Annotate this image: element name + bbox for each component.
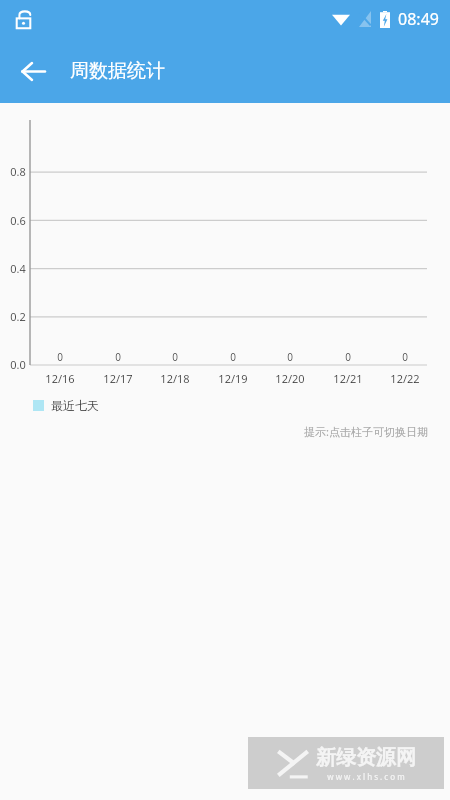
- staticText: w w w . x l h s . c o m: [327, 771, 405, 782]
- button[interactable]: 0: [94, 348, 142, 365]
- staticText: 12/21: [333, 371, 363, 386]
- button[interactable]: Back: [9, 47, 57, 95]
- button[interactable]: 0: [324, 348, 372, 365]
- staticText: 12/17: [103, 371, 133, 386]
- staticText: 新绿资源网: [316, 745, 416, 770]
- button[interactable]: 最近七天: [33, 398, 99, 413]
- staticText: 12/20: [275, 371, 305, 386]
- staticText: 0: [57, 350, 63, 364]
- staticText: 最近七天: [51, 398, 99, 413]
- button[interactable]: 0: [151, 348, 199, 365]
- button[interactable]: 0: [381, 348, 429, 365]
- staticText: 08:49: [398, 8, 439, 30]
- staticText: 0.0: [10, 357, 26, 372]
- staticText: 提示:点击柱子可切换日期: [304, 424, 428, 439]
- staticText: 周数据统计: [70, 59, 165, 83]
- staticText: 12/16: [45, 371, 75, 386]
- staticText: 0: [115, 350, 121, 364]
- staticText: 0: [287, 350, 293, 364]
- button[interactable]: 0: [266, 348, 314, 365]
- staticText: 12/18: [160, 371, 190, 386]
- staticText: 0: [402, 350, 408, 364]
- button[interactable]: 0: [36, 348, 84, 365]
- staticText: 0.2: [10, 309, 26, 324]
- button[interactable]: 0: [209, 348, 257, 365]
- staticText: 0: [172, 350, 178, 364]
- staticText: 12/19: [218, 371, 248, 386]
- staticText: 0.6: [10, 213, 26, 228]
- staticText: 0: [230, 350, 236, 364]
- other: Unlocked: [15, 10, 32, 29]
- staticText: 0.8: [10, 164, 26, 179]
- staticText: 0.4: [10, 261, 26, 276]
- staticText: 0: [345, 350, 351, 364]
- staticText: 12/22: [390, 371, 420, 386]
